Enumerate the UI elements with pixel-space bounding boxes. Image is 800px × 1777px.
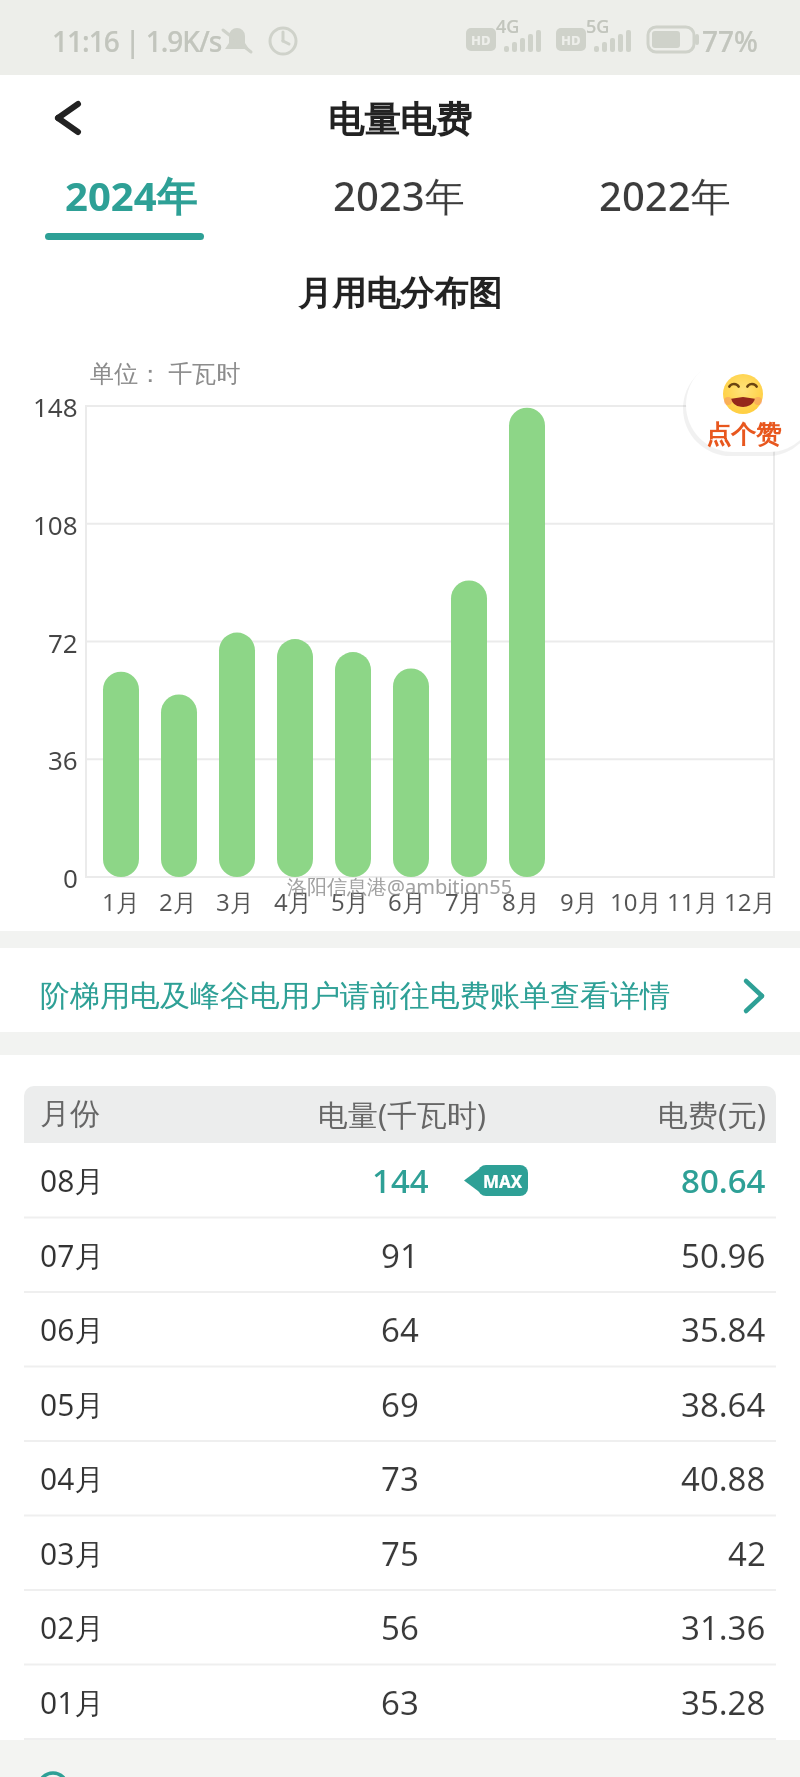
staticText: 50.96	[681, 1233, 766, 1278]
staticText: 2月	[159, 885, 197, 918]
staticText: 06月	[40, 1309, 105, 1350]
staticText: 04月	[40, 1458, 105, 1499]
staticText: 5G	[586, 14, 610, 39]
staticText: 42	[728, 1531, 766, 1576]
staticText: HD	[561, 31, 581, 49]
staticText: 8月	[502, 885, 540, 918]
staticText: MAX	[483, 1170, 523, 1193]
button[interactable]	[0, 1367, 800, 1441]
staticText: 12月	[724, 885, 776, 918]
staticText: 77%	[702, 22, 758, 60]
staticText: 02月	[40, 1607, 105, 1648]
staticText: 38.64	[681, 1382, 766, 1427]
button[interactable]	[0, 1292, 800, 1366]
staticText: 144	[372, 1158, 429, 1203]
button[interactable]	[0, 1590, 800, 1664]
staticText: 2024年	[65, 168, 197, 223]
button[interactable]	[0, 1665, 800, 1739]
button[interactable]: 2023年	[0, 0, 180, 60]
staticText: 阶梯用电及峰谷电用户请前往电费账单查看详情	[40, 977, 670, 1015]
staticText: 35.84	[681, 1307, 766, 1352]
staticText: 69	[381, 1382, 419, 1427]
button[interactable]: 2022年	[0, 0, 180, 60]
staticText: 108	[33, 507, 78, 542]
button[interactable]	[0, 1218, 800, 1292]
button[interactable]	[0, 948, 800, 1032]
staticText: 6月	[388, 885, 426, 918]
staticText: 9月	[560, 885, 598, 918]
staticText: 月用电分布图	[298, 272, 502, 315]
staticText: 11:16 | 1.9K/s	[52, 22, 222, 60]
staticText: 电量(千瓦时)	[318, 1094, 486, 1135]
staticText: 36	[48, 742, 78, 777]
staticText: 4月	[274, 885, 312, 918]
staticText: 63	[381, 1680, 419, 1725]
staticText: 05月	[40, 1384, 105, 1425]
staticText: 月份	[40, 1095, 100, 1133]
staticText: HD	[471, 31, 491, 49]
staticText: 64	[381, 1307, 419, 1352]
button[interactable]	[0, 1143, 800, 1217]
staticText: 75	[381, 1531, 419, 1576]
staticText: 31.36	[681, 1605, 766, 1650]
button[interactable]: 2024年	[0, 0, 180, 60]
staticText: 10月	[610, 885, 662, 918]
button[interactable]	[40, 90, 100, 146]
staticText: 点个赞	[706, 419, 781, 450]
staticText: 03月	[40, 1533, 105, 1574]
staticText: 3月	[216, 885, 254, 918]
staticText: 11月	[667, 885, 719, 918]
staticText: 35.28	[681, 1680, 766, 1725]
button[interactable]	[0, 1516, 800, 1590]
staticText: 电费(元)	[658, 1094, 766, 1135]
staticText: 0	[63, 860, 78, 895]
staticText: 07月	[40, 1235, 105, 1276]
staticText: 148	[33, 389, 78, 424]
staticText: 单位： 千瓦时	[90, 356, 241, 389]
staticText: 4G	[496, 14, 520, 39]
staticText: 2023年	[333, 168, 465, 223]
staticText: 洛阳信息港@ambition55	[287, 873, 513, 900]
staticText: 电量电费	[328, 97, 472, 142]
staticText: 7月	[445, 885, 483, 918]
staticText: 40.88	[681, 1456, 766, 1501]
staticText: 91	[381, 1233, 419, 1278]
staticText: 1月	[102, 885, 140, 918]
staticText: 72	[48, 625, 78, 660]
button[interactable]	[686, 358, 800, 452]
staticText: 01月	[40, 1682, 105, 1723]
staticText: 08月	[40, 1160, 105, 1201]
staticText: 80.64	[681, 1158, 766, 1203]
staticText: 56	[381, 1605, 419, 1650]
staticText: 2022年	[599, 168, 731, 223]
staticText: 5月	[331, 885, 369, 918]
button[interactable]	[0, 1441, 800, 1515]
staticText: 73	[381, 1456, 419, 1501]
